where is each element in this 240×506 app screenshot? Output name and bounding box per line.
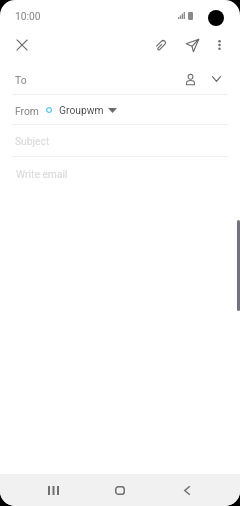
button[interactable]: Write email — [0, 157, 240, 187]
staticText: Subject — [15, 135, 50, 147]
button[interactable]: Send — [179, 32, 205, 58]
staticText: 10:00 — [15, 10, 41, 22]
staticText: Write email — [16, 168, 68, 180]
staticText: To — [15, 74, 27, 86]
button[interactable]: From — [0, 95, 240, 125]
button[interactable]: Contacts — [179, 68, 201, 90]
staticText: From — [15, 105, 39, 117]
button[interactable]: Expand recipients — [205, 68, 227, 90]
button[interactable]: Close — [9, 32, 35, 58]
button[interactable]: More options — [206, 32, 232, 58]
staticText: Groupwm — [59, 104, 104, 116]
button[interactable]: Attach file — [148, 32, 174, 58]
button[interactable]: To — [0, 62, 240, 95]
button[interactable]: Home — [107, 477, 133, 503]
button[interactable]: Recent apps — [40, 477, 66, 503]
button[interactable]: Back — [174, 477, 200, 503]
button[interactable]: Subject — [0, 125, 240, 156]
